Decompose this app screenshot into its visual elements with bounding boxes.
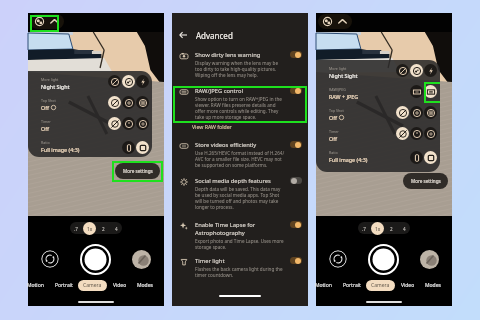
button[interactable]: Camera option bbox=[122, 96, 135, 109]
staticText: More light bbox=[41, 77, 59, 82]
button[interactable]: 2 bbox=[386, 223, 397, 234]
button[interactable]: Shutter bbox=[80, 244, 111, 275]
button[interactable]: .7 bbox=[358, 223, 369, 234]
staticText: Off bbox=[329, 114, 337, 121]
button[interactable]: RAW/JPEG bbox=[329, 87, 393, 100]
button[interactable]: Camera option bbox=[410, 127, 423, 140]
staticText: Motion bbox=[27, 282, 44, 289]
button[interactable]: 1x bbox=[371, 222, 384, 235]
button[interactable]: Toggle bbox=[290, 141, 302, 148]
button[interactable]: Show dirty lens warning bbox=[172, 51, 308, 78]
button[interactable]: Camera option bbox=[122, 75, 135, 88]
button[interactable]: Enable Time Lapse for Astrophotography bbox=[172, 221, 308, 250]
button[interactable]: Ratio bbox=[329, 150, 393, 163]
staticText: Camera bbox=[83, 282, 102, 289]
button[interactable]: Camera option bbox=[122, 141, 135, 154]
button[interactable]: .7 bbox=[70, 223, 81, 234]
button[interactable]: Store videos efficiently bbox=[172, 141, 308, 168]
button[interactable]: Camera option bbox=[424, 151, 437, 164]
button[interactable]: Video bbox=[396, 280, 420, 291]
button[interactable]: Camera option bbox=[108, 96, 121, 109]
button[interactable]: Camera option bbox=[108, 75, 121, 88]
button[interactable]: Timer light bbox=[172, 257, 308, 278]
button[interactable]: Top Shot bbox=[329, 108, 393, 121]
staticText: Show option to turn on RAW+JPEG in the v… bbox=[195, 96, 286, 120]
button[interactable]: Camera option bbox=[410, 64, 423, 77]
button[interactable]: Camera option bbox=[108, 117, 121, 130]
button[interactable]: Camera option bbox=[122, 117, 135, 130]
button[interactable]: Portrait bbox=[50, 280, 78, 291]
button[interactable]: View RAW folder bbox=[192, 123, 232, 130]
staticText: RAW + JPEG bbox=[329, 93, 359, 100]
button[interactable]: Camera status bbox=[35, 17, 59, 26]
staticText: Night Sight bbox=[329, 72, 358, 79]
button[interactable]: Camera option bbox=[136, 75, 149, 88]
button[interactable]: Motion bbox=[310, 280, 337, 291]
staticText: Full image (4:3) bbox=[329, 156, 368, 163]
button[interactable]: More light bbox=[41, 77, 105, 90]
button[interactable]: Camera bbox=[366, 280, 395, 291]
button[interactable]: Timer bbox=[41, 119, 105, 132]
button[interactable]: More settings bbox=[403, 173, 448, 189]
button[interactable]: RAW/JPEG control bbox=[172, 87, 308, 120]
button[interactable]: Camera option bbox=[410, 151, 423, 164]
button[interactable]: Gallery bbox=[132, 250, 151, 269]
button[interactable]: Camera option bbox=[396, 106, 409, 119]
button[interactable]: Camera option bbox=[410, 106, 423, 119]
staticText: Use H.265/HEVC format instead of H.264/A… bbox=[195, 150, 286, 168]
button[interactable]: Timer bbox=[329, 129, 393, 142]
button[interactable]: 1x bbox=[83, 222, 96, 235]
button[interactable]: Portrait bbox=[338, 280, 366, 291]
button[interactable]: Toggle bbox=[290, 51, 302, 58]
button[interactable]: Modes bbox=[420, 280, 446, 291]
staticText: More settings bbox=[411, 178, 441, 184]
button[interactable]: Camera option bbox=[424, 127, 437, 140]
staticText: Advanced bbox=[196, 30, 233, 41]
button[interactable]: Modes bbox=[132, 280, 158, 291]
staticText: Display warning when the lens may be too… bbox=[195, 60, 286, 78]
staticText: Video bbox=[401, 282, 415, 289]
button[interactable]: Toggle bbox=[290, 221, 302, 228]
button[interactable]: Social media depth features bbox=[172, 177, 308, 210]
button[interactable]: 4 bbox=[399, 223, 410, 234]
button[interactable]: Camera option bbox=[136, 141, 149, 154]
button[interactable]: Toggle bbox=[290, 257, 302, 264]
staticText: Depth data will be saved. This data may … bbox=[195, 186, 286, 210]
button[interactable]: Camera option bbox=[396, 127, 409, 140]
button[interactable]: Shutter bbox=[368, 244, 399, 275]
staticText: RAW/JPEG control bbox=[195, 87, 243, 95]
button[interactable]: Camera option bbox=[410, 85, 423, 98]
staticText: 2 bbox=[102, 226, 105, 232]
button[interactable]: Camera option bbox=[424, 64, 437, 77]
button[interactable]: Toggle bbox=[290, 87, 302, 94]
button[interactable]: Camera status bbox=[323, 17, 347, 26]
staticText: Modes bbox=[425, 282, 441, 289]
button[interactable]: Camera option bbox=[424, 106, 437, 119]
button[interactable]: Switch camera bbox=[41, 250, 59, 268]
button[interactable]: Video bbox=[108, 280, 132, 291]
button[interactable]: Camera option bbox=[424, 85, 437, 98]
button[interactable]: Camera bbox=[78, 280, 107, 291]
button[interactable]: Motion bbox=[22, 280, 49, 291]
button[interactable]: More settings bbox=[115, 163, 160, 179]
staticText: Top Shot bbox=[41, 98, 56, 103]
button[interactable]: 2 bbox=[98, 223, 109, 234]
staticText: Flashes the back camera light during the… bbox=[195, 266, 286, 278]
staticText: Camera bbox=[371, 282, 390, 289]
button[interactable]: Ratio bbox=[41, 140, 105, 153]
button[interactable]: Camera option bbox=[136, 96, 149, 109]
button[interactable]: More light bbox=[329, 66, 393, 79]
staticText: Export photo and Time Lapse. Uses more s… bbox=[195, 238, 286, 250]
button[interactable]: Camera option bbox=[136, 117, 149, 130]
button[interactable]: Top Shot bbox=[41, 98, 105, 111]
staticText: More settings bbox=[123, 168, 153, 174]
button[interactable]: Gallery bbox=[420, 250, 439, 269]
staticText: Portrait bbox=[343, 282, 361, 289]
button[interactable]: Switch camera bbox=[329, 250, 347, 268]
button[interactable]: Back bbox=[176, 28, 190, 42]
staticText: Timer bbox=[329, 129, 339, 134]
button[interactable]: Toggle bbox=[290, 177, 302, 184]
button[interactable]: Camera option bbox=[396, 64, 409, 77]
button[interactable]: 4 bbox=[111, 223, 122, 234]
staticText: Social media depth features bbox=[195, 177, 271, 185]
